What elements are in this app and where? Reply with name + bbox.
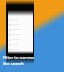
button[interactable] bbox=[8, 22, 33, 27]
staticText: the search bbox=[3, 61, 24, 67]
button[interactable] bbox=[8, 27, 33, 32]
button[interactable] bbox=[8, 37, 33, 42]
staticText: Filter to narrow bbox=[3, 55, 34, 61]
button[interactable] bbox=[8, 32, 33, 37]
button[interactable] bbox=[8, 47, 33, 52]
button[interactable] bbox=[8, 42, 33, 47]
button[interactable] bbox=[8, 17, 33, 22]
